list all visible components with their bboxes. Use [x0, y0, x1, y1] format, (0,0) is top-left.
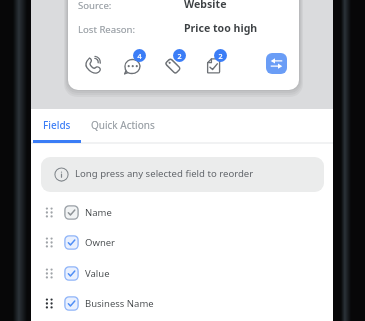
button[interactable]: Name	[31, 198, 333, 227]
button[interactable]: Call	[80, 52, 106, 78]
button[interactable]: Long press any selected field to reorder	[41, 157, 324, 192]
staticText: Long press any selected field to reorder	[75, 167, 254, 180]
button[interactable]: Business Name	[31, 289, 333, 318]
button[interactable]: Tasks	[201, 52, 227, 78]
staticText: 2	[218, 51, 223, 61]
staticText: 2	[177, 51, 182, 61]
button[interactable]: Convert	[266, 53, 287, 74]
staticText: Value	[85, 267, 110, 280]
staticText: Fields	[43, 118, 71, 132]
button[interactable]: Fields	[33, 109, 81, 140]
button[interactable]: Messages	[120, 52, 146, 78]
button[interactable]: Value	[31, 259, 333, 288]
staticText: Lost Reason:	[78, 23, 136, 36]
staticText: Owner	[85, 236, 116, 249]
button[interactable]: Quick Actions	[85, 109, 161, 140]
staticText: 4	[137, 51, 142, 61]
staticText: Quick Actions	[91, 118, 155, 132]
staticText: Price too high	[184, 21, 258, 35]
staticText: Name	[85, 206, 112, 219]
staticText: Website	[184, 0, 227, 11]
button[interactable]: Tags	[160, 52, 186, 78]
staticText: Source:	[78, 0, 112, 12]
button[interactable]: Owner	[31, 228, 333, 257]
staticText: Business Name	[85, 297, 154, 310]
